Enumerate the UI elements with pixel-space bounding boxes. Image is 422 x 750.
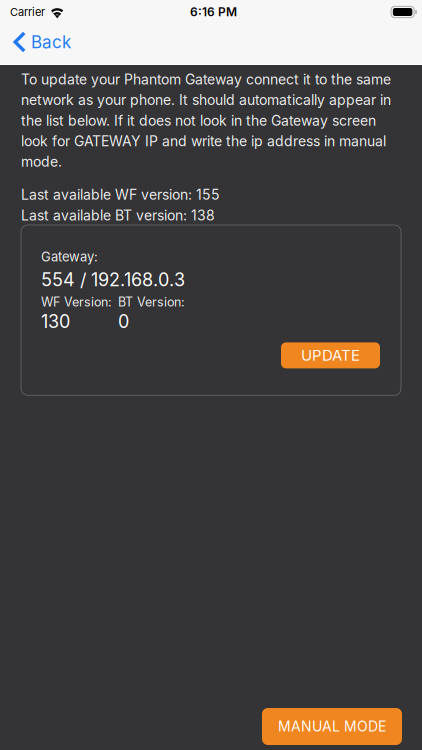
staticText: 554 / 192.168.0.3 xyxy=(41,269,185,290)
staticText: UPDATE xyxy=(301,346,360,364)
staticText: WF Version: xyxy=(41,294,112,310)
button[interactable]: UPDATE xyxy=(281,342,380,368)
staticText: Back xyxy=(31,32,71,52)
staticText: 0 xyxy=(118,311,129,332)
staticText: Last available BT version: 138 xyxy=(21,207,215,224)
button[interactable]: Back xyxy=(0,28,83,56)
staticText: 130 xyxy=(41,311,70,332)
staticText: 6:16 PM xyxy=(190,5,237,19)
staticText: MANUAL MODE xyxy=(278,718,386,735)
staticText: To update your Phantom Gateway connect i… xyxy=(21,71,391,170)
staticText: BT Version: xyxy=(118,294,185,310)
button[interactable]: MANUAL MODE xyxy=(262,708,402,745)
staticText: Last available WF version: 155 xyxy=(21,186,220,203)
staticText: Gateway: xyxy=(41,249,98,265)
staticText: Carrier xyxy=(10,5,45,19)
